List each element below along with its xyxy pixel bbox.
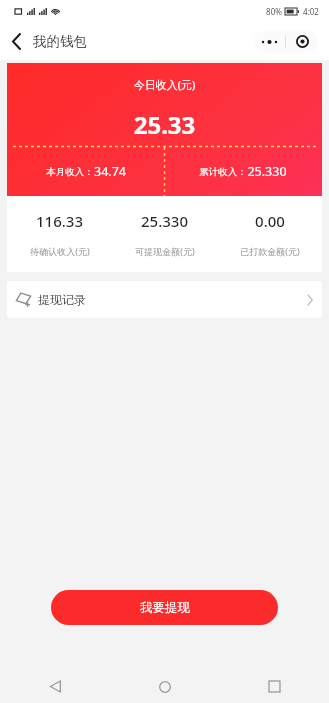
staticText: 34.74 [94, 163, 126, 180]
staticText: 4:02 [303, 6, 319, 17]
button[interactable]: 116.33 [7, 196, 112, 272]
button[interactable]: Back [34, 670, 76, 703]
staticText: 我要提现 [140, 600, 190, 616]
staticText: 116.33 [36, 211, 83, 231]
staticText: 25.330 [247, 163, 287, 180]
button[interactable]: 25.330 [112, 196, 217, 272]
staticText: 25.33 [7, 108, 322, 141]
staticText: 本月收入： [46, 166, 94, 178]
staticText: 我的钱包 [33, 33, 87, 50]
staticText: 0.00 [255, 211, 285, 231]
button[interactable]: More options [254, 30, 285, 53]
button[interactable]: Back [0, 24, 34, 58]
button[interactable]: Recents [253, 670, 295, 703]
staticText: 80% [266, 6, 282, 17]
staticText: 累计收入： [199, 166, 247, 178]
staticText: 提现记录 [38, 292, 86, 307]
button[interactable]: 我要提现 [51, 590, 278, 625]
button[interactable]: 0.00 [217, 196, 322, 272]
staticText: 25.330 [141, 211, 188, 231]
button[interactable]: Target [286, 30, 318, 53]
staticText: 待确认收入(元) [30, 245, 90, 257]
button[interactable]: Home [144, 670, 186, 703]
button[interactable]: 提现记录 [7, 281, 322, 318]
staticText: 今日收入(元) [7, 77, 322, 92]
staticText: 已打款金额(元) [240, 245, 300, 257]
staticText: 可提现金额(元) [135, 245, 195, 257]
